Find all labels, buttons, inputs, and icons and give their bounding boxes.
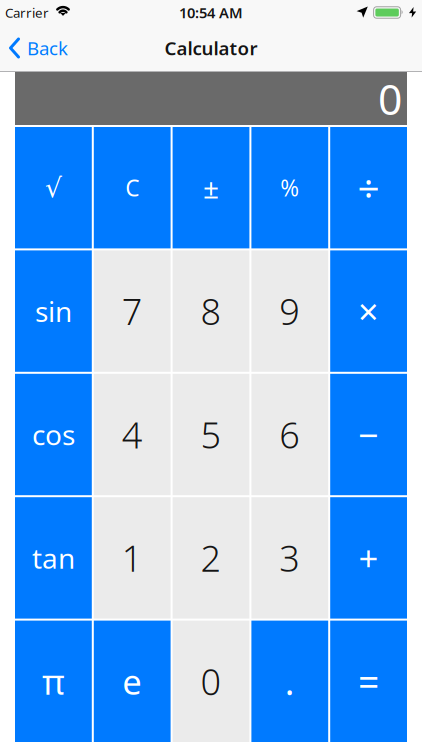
staticText: 9 — [279, 287, 300, 335]
button[interactable]: 6 — [251, 374, 328, 495]
button[interactable]: 9 — [251, 250, 328, 372]
staticText: + — [359, 535, 379, 581]
button[interactable]: % — [251, 127, 328, 248]
staticText: × — [358, 287, 379, 335]
staticText: = — [358, 656, 379, 706]
staticText: ÷ — [358, 162, 380, 213]
button[interactable]: 0 — [173, 621, 249, 742]
staticText: C — [125, 173, 139, 203]
button[interactable]: ÷ — [330, 127, 407, 248]
button[interactable]: tan — [15, 497, 92, 619]
staticText: 8 — [200, 287, 221, 335]
staticText: e — [122, 658, 142, 704]
staticText: 2 — [200, 534, 221, 582]
button[interactable]: 1 — [94, 497, 171, 619]
staticText: Calculator — [164, 36, 257, 60]
staticText: Carrier — [5, 4, 49, 21]
button[interactable]: + — [330, 497, 407, 619]
button[interactable]: sin — [15, 250, 92, 372]
staticText: sin — [35, 292, 72, 330]
staticText: − — [358, 411, 379, 458]
button[interactable]: 3 — [251, 497, 328, 619]
staticText: 4 — [122, 411, 143, 458]
button[interactable]: . — [251, 621, 328, 742]
button[interactable]: 2 — [173, 497, 249, 619]
staticText: 10:54 AM — [179, 3, 243, 22]
button[interactable]: = — [330, 621, 407, 742]
staticText: π — [42, 658, 65, 704]
button[interactable]: − — [330, 374, 407, 495]
staticText: 7 — [122, 287, 143, 335]
staticText: Back — [27, 36, 68, 60]
staticText: 1 — [122, 534, 143, 582]
staticText: 0 — [378, 70, 402, 127]
button[interactable]: ± — [173, 127, 249, 248]
button[interactable]: 4 — [94, 374, 171, 495]
button[interactable]: cos — [15, 374, 92, 495]
staticText: 3 — [279, 534, 300, 582]
button[interactable]: e — [94, 621, 171, 742]
button[interactable]: 8 — [173, 250, 249, 372]
staticText: 5 — [200, 411, 221, 458]
button[interactable]: 7 — [94, 250, 171, 372]
staticText: . — [285, 657, 295, 705]
staticText: % — [280, 173, 299, 203]
button[interactable]: π — [15, 621, 92, 742]
button[interactable]: C — [94, 127, 171, 248]
button[interactable]: × — [330, 250, 407, 372]
staticText: tan — [32, 539, 75, 576]
staticText: ± — [203, 169, 219, 206]
staticText: √ — [45, 173, 62, 203]
button[interactable]: √ — [15, 127, 92, 248]
button[interactable]: 5 — [173, 374, 249, 495]
staticText: 0 — [200, 657, 221, 705]
button[interactable]: Back — [0, 36, 68, 60]
staticText: 6 — [279, 411, 300, 458]
staticText: cos — [32, 416, 75, 453]
